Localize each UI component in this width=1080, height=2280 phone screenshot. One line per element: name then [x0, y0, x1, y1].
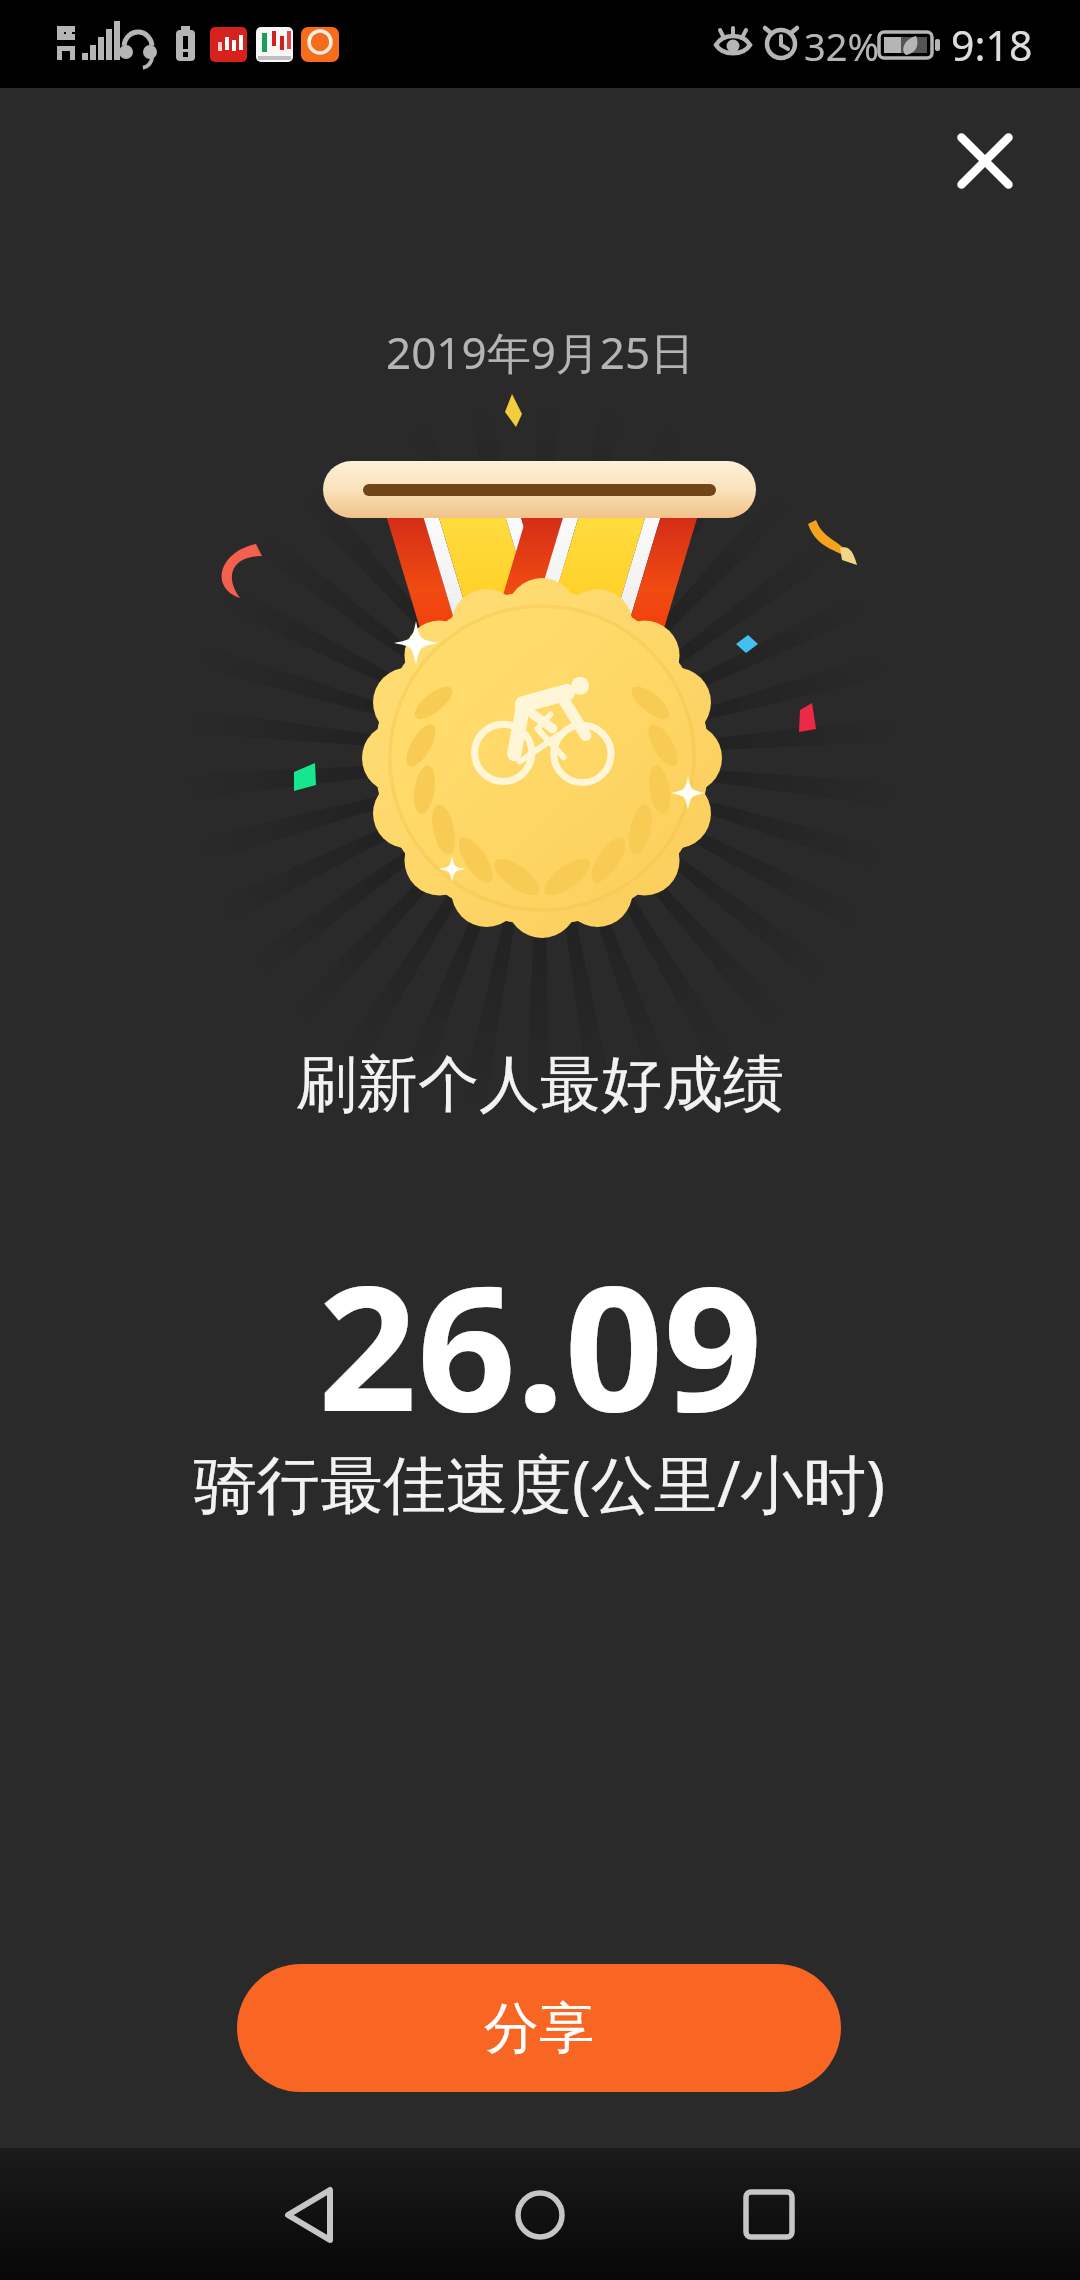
button[interactable]: Home [480, 2148, 600, 2280]
staticText: 分享 [484, 1994, 594, 2063]
button[interactable]: Recents [709, 2148, 829, 2280]
staticText: 32% [804, 20, 880, 72]
staticText: 26.09 [318, 1226, 763, 1462]
staticText: 2019年9月25日 [386, 322, 695, 382]
staticText: 9:18 [951, 17, 1033, 73]
staticText: 骑行最佳速度(公里/小时) [194, 1440, 886, 1526]
button[interactable]: Close [925, 101, 1045, 221]
staticText: 刷新个人最好成绩 [296, 1046, 784, 1123]
button[interactable]: Back [250, 2148, 370, 2280]
button[interactable]: 分享 [237, 1964, 841, 2092]
